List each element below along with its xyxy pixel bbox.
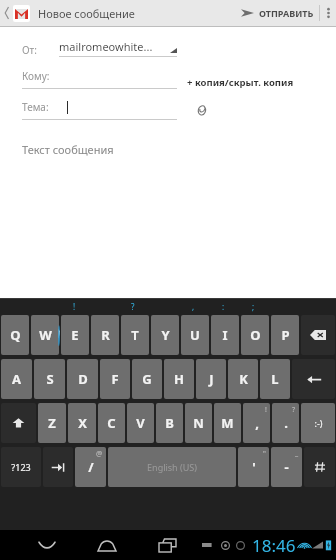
staticText: T xyxy=(131,326,139,344)
staticText: 18:46 xyxy=(252,534,296,557)
button[interactable]: D xyxy=(67,359,98,399)
button[interactable]: T xyxy=(121,315,149,355)
button[interactable]: U xyxy=(181,315,209,355)
staticText: B xyxy=(165,414,174,432)
staticText: :-) xyxy=(314,417,323,429)
staticText: C xyxy=(107,414,116,432)
button[interactable]: Shift xyxy=(1,403,36,443)
button[interactable]: ОТПРАВИТЬ xyxy=(236,0,319,26)
button[interactable]: R xyxy=(91,315,119,355)
staticText: Q xyxy=(10,326,21,344)
button[interactable]: K xyxy=(228,359,258,399)
button[interactable]: Текст сообщения xyxy=(22,142,336,157)
staticText: , xyxy=(192,301,195,312)
button[interactable]: O xyxy=(241,315,269,355)
button[interactable]: Кому: xyxy=(22,69,177,89)
staticText: ; xyxy=(252,301,255,312)
button[interactable]: " xyxy=(238,447,269,487)
staticText: P xyxy=(281,326,290,344)
button[interactable]: S xyxy=(34,359,65,399)
button[interactable]: X xyxy=(68,403,96,443)
button[interactable]: Back xyxy=(0,0,32,26)
button[interactable]: M xyxy=(214,403,241,443)
button[interactable]: W xyxy=(31,315,59,355)
staticText: ?123 xyxy=(11,461,31,473)
staticText: X xyxy=(78,414,87,432)
staticText: Y xyxy=(161,326,170,344)
button[interactable]: Back xyxy=(30,530,64,560)
button[interactable]: + копия/скрыт. копия xyxy=(187,76,294,89)
staticText: : xyxy=(222,301,225,312)
staticText: N xyxy=(193,414,204,432)
button[interactable]: mailromeowhite... xyxy=(59,39,177,57)
staticText: I xyxy=(222,326,228,344)
button[interactable]: More options xyxy=(320,0,336,26)
button[interactable]: ? xyxy=(272,403,299,443)
staticText: ! xyxy=(73,301,76,312)
button[interactable]: C xyxy=(98,403,125,443)
button[interactable]: B xyxy=(156,403,183,443)
staticText: G xyxy=(142,370,152,388)
staticText: . xyxy=(284,414,288,432)
staticText: Z xyxy=(48,414,56,432)
button[interactable]: H xyxy=(164,359,194,399)
staticText: + копия/скрыт. копия xyxy=(187,76,294,89)
staticText: W xyxy=(39,326,52,344)
button[interactable]: :-) xyxy=(301,403,335,443)
button[interactable]: Tab xyxy=(43,447,73,487)
button[interactable]: I xyxy=(211,315,239,355)
button[interactable]: Q xyxy=(1,315,29,355)
button[interactable]: E xyxy=(61,315,89,355)
button[interactable]: P xyxy=(271,315,299,355)
staticText: S xyxy=(46,370,54,388)
button[interactable]: Recent apps xyxy=(150,530,184,560)
staticText: _ xyxy=(295,449,299,459)
staticText: ! xyxy=(265,405,267,415)
button[interactable]: Z xyxy=(38,403,66,443)
staticText: ? xyxy=(292,405,296,415)
button[interactable]: Home xyxy=(90,530,124,560)
staticText: Тема: xyxy=(22,100,49,114)
staticText: H xyxy=(174,370,184,388)
staticText: @ xyxy=(96,449,103,459)
button[interactable]: L xyxy=(260,359,290,399)
button[interactable]: Keyboard settings xyxy=(304,447,335,487)
staticText: Новое сообщение xyxy=(38,6,135,21)
staticText: - xyxy=(284,458,289,476)
staticText: , xyxy=(255,414,259,432)
button[interactable]: J xyxy=(196,359,226,399)
button[interactable]: G xyxy=(132,359,162,399)
staticText: V xyxy=(136,414,145,432)
staticText: ОТПРАВИТЬ xyxy=(259,7,314,19)
staticText: R xyxy=(101,326,110,344)
button[interactable]: Enter xyxy=(292,359,335,399)
staticText: U xyxy=(190,326,200,344)
staticText: Текст сообщения xyxy=(22,142,114,157)
staticText: M xyxy=(221,414,234,432)
staticText: mailromeowhite... xyxy=(59,39,153,54)
staticText: D xyxy=(78,370,88,388)
button[interactable]: Тема: xyxy=(22,100,177,120)
button[interactable]: V xyxy=(127,403,154,443)
button[interactable]: ! xyxy=(243,403,270,443)
button[interactable]: F xyxy=(100,359,130,399)
button[interactable]: Attach file xyxy=(191,100,211,120)
staticText: E xyxy=(71,326,79,344)
staticText: F xyxy=(111,370,119,388)
staticText: / xyxy=(88,458,94,476)
button[interactable]: Y xyxy=(151,315,179,355)
staticText: English (US) xyxy=(147,461,197,473)
button[interactable]: _ xyxy=(271,447,302,487)
button[interactable]: A xyxy=(1,359,32,399)
button[interactable]: ?123 xyxy=(1,447,41,487)
staticText: A xyxy=(12,370,21,388)
staticText: ? xyxy=(131,301,135,312)
staticText: J xyxy=(209,370,214,388)
staticText: Кому: xyxy=(22,69,50,83)
staticText: " xyxy=(263,449,266,459)
button[interactable]: Backspace xyxy=(301,315,335,355)
button[interactable]: English (US) xyxy=(108,447,236,487)
button[interactable]: N xyxy=(185,403,212,443)
button[interactable]: @ xyxy=(75,447,106,487)
staticText: O xyxy=(250,326,261,344)
